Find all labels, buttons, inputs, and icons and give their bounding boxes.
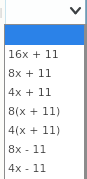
button[interactable]: Open dropdown: [5, 0, 87, 25]
button[interactable]: 4(x + 11): [5, 121, 84, 140]
staticText: 8x + 11: [8, 67, 52, 80]
button[interactable]: 8x + 11: [5, 64, 84, 83]
button[interactable]: 4x + 11: [5, 83, 84, 102]
other: Open dropdown: [70, 7, 81, 14]
staticText: 4x + 11: [8, 86, 52, 99]
button[interactable]: 8x - 11: [5, 140, 84, 159]
button[interactable]: 4x - 11: [5, 159, 84, 178]
staticText: 8(x + 11): [8, 105, 61, 118]
button[interactable]: 8(x + 11): [5, 102, 84, 121]
staticText: 8x - 11: [8, 143, 47, 156]
staticText: 4x - 11: [8, 162, 47, 175]
button[interactable]: 16x + 11: [5, 45, 84, 64]
staticText: 16x + 11: [8, 48, 59, 61]
staticText: 4(x + 11): [8, 124, 61, 137]
